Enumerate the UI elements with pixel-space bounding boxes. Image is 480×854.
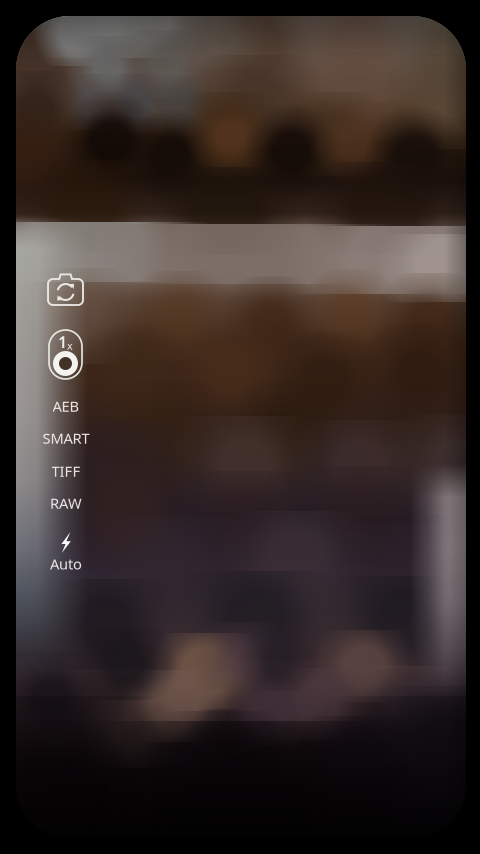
- staticText: TIFF: [51, 461, 80, 481]
- button[interactable]: AEB: [16, 390, 116, 422]
- button[interactable]: SMART: [16, 422, 116, 454]
- staticText: SMART: [42, 428, 89, 448]
- staticText: Auto: [50, 554, 82, 573]
- button[interactable]: Zoom 1 times: [49, 330, 82, 379]
- button[interactable]: TIFF: [16, 455, 116, 487]
- staticText: RAW: [50, 493, 82, 513]
- staticText: AEB: [52, 396, 79, 416]
- staticText: x: [67, 338, 73, 353]
- staticText: 1: [58, 331, 67, 353]
- button[interactable]: Flash Auto: [16, 532, 116, 573]
- button[interactable]: RAW: [16, 487, 116, 519]
- button[interactable]: Switch camera: [47, 272, 84, 306]
